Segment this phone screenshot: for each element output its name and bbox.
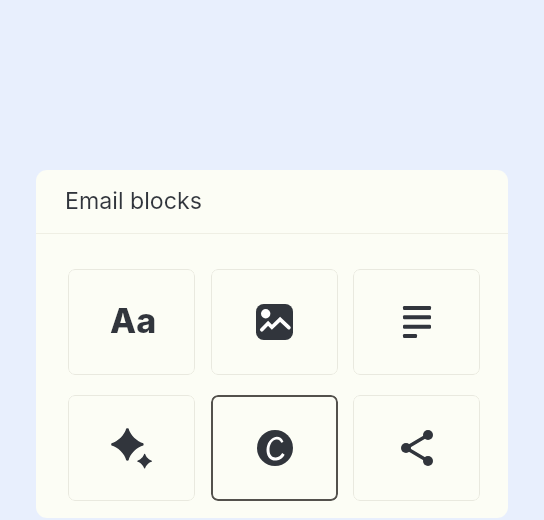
button[interactable]: Share block [353,395,480,501]
staticText: Email blocks [65,187,202,215]
button[interactable]: AI magic block [68,395,195,501]
button[interactable]: Paragraph block [353,269,480,375]
button[interactable]: Canva design block [211,395,338,501]
button[interactable]: Image block [211,269,338,375]
button[interactable]: Text block [68,269,195,375]
staticText: Aa [110,300,157,341]
